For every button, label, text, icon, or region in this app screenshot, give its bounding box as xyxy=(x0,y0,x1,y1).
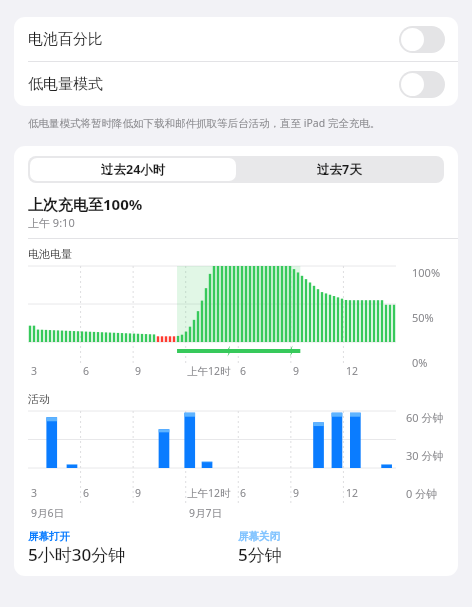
staticText: 9 xyxy=(293,364,300,378)
staticText: 5分钟 xyxy=(238,543,282,566)
staticText: 50% xyxy=(412,310,434,325)
staticText: 0% xyxy=(412,355,428,370)
staticText: 9 xyxy=(293,486,300,500)
staticText: 30 分钟 xyxy=(406,448,444,463)
button[interactable]: 电池百分比 xyxy=(399,26,445,53)
staticText: 屏幕关闭 xyxy=(238,530,280,543)
button[interactable]: 电池百分比 xyxy=(14,17,458,61)
staticText: 60 分钟 xyxy=(406,410,444,425)
staticText: 低电量模式 xyxy=(28,75,399,94)
button[interactable]: 过去24小时 xyxy=(30,158,236,181)
staticText: 低电量模式将暂时降低如下载和邮件抓取等后台活动，直至 iPad 完全充电。 xyxy=(28,116,381,130)
staticText: 屏幕打开 xyxy=(28,530,70,543)
staticText: 6 xyxy=(83,364,90,378)
staticText: 电池百分比 xyxy=(28,30,399,49)
staticText: 9 xyxy=(135,364,142,378)
staticText: 9 xyxy=(135,486,142,500)
staticText: 活动 xyxy=(28,392,50,406)
staticText: 上午 9:10 xyxy=(28,215,75,230)
staticText: 3 xyxy=(31,364,38,378)
button[interactable]: 低电量模式 xyxy=(14,62,458,106)
staticText: 12 xyxy=(346,364,359,378)
staticText: 过去24小时 xyxy=(101,161,166,178)
staticText: 上午12时 xyxy=(187,364,231,378)
staticText: 6 xyxy=(240,364,247,378)
staticText: 电池电量 xyxy=(28,247,72,261)
staticText: 6 xyxy=(240,486,247,500)
button[interactable]: 低电量模式 xyxy=(399,71,445,98)
staticText: 9月7日 xyxy=(189,506,223,520)
button[interactable]: 过去7天 xyxy=(236,158,442,181)
staticText: 5小时30分钟 xyxy=(28,543,126,566)
staticText: 6 xyxy=(83,486,90,500)
staticText: 3 xyxy=(31,486,38,500)
staticText: 过去7天 xyxy=(317,161,362,178)
staticText: 0 分钟 xyxy=(406,486,438,501)
staticText: 100% xyxy=(412,265,441,280)
staticText: 9月6日 xyxy=(31,506,65,520)
staticText: 上次充电至100% xyxy=(28,194,143,214)
staticText: 12 xyxy=(346,486,359,500)
staticText: 上午12时 xyxy=(187,486,231,500)
